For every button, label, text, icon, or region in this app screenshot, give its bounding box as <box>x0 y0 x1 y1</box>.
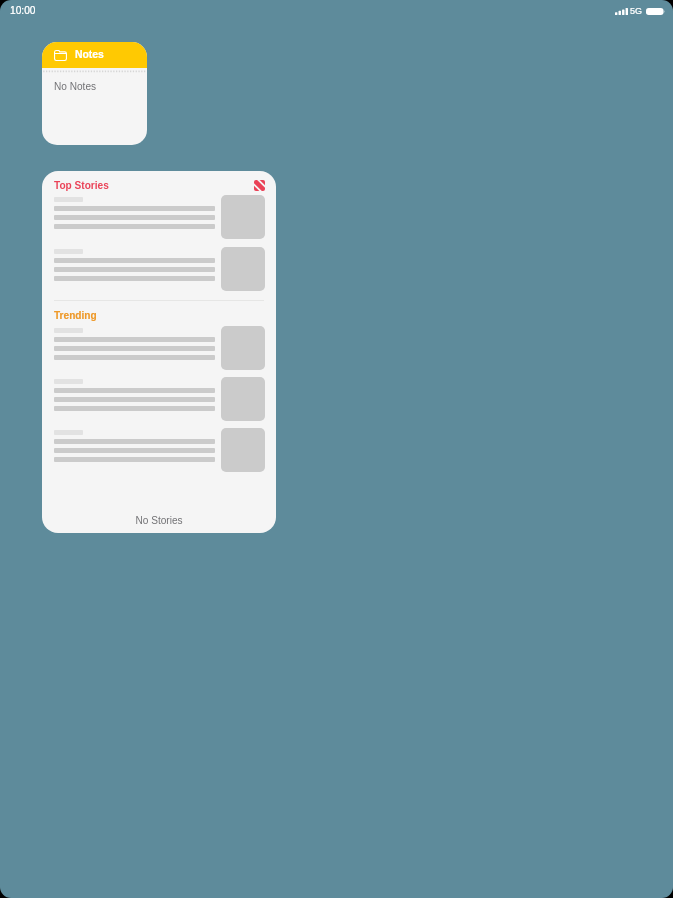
staticText: No Stories <box>42 515 276 526</box>
button[interactable]: Top Stories <box>42 171 276 533</box>
button[interactable]: Notes <box>42 42 147 145</box>
staticText: Notes <box>75 49 104 61</box>
staticText: Top Stories <box>54 180 109 191</box>
other: News <box>254 180 265 191</box>
staticText: 5G <box>630 6 643 16</box>
staticText: 10:00 <box>10 5 36 16</box>
staticText: Trending <box>54 310 97 321</box>
staticText: No Notes <box>54 81 97 92</box>
